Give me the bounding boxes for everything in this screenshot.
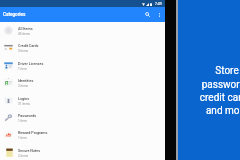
staticText: 2 items [18, 154, 29, 158]
staticText: 3 items [18, 49, 29, 53]
staticText: Credit Cards [18, 44, 39, 48]
button[interactable]: Driver Licenses [0, 57, 165, 74]
button[interactable]: Passwords [0, 109, 165, 126]
staticText: 1 item [18, 119, 27, 123]
staticText: Identities [18, 79, 34, 83]
staticText: Categories [3, 12, 26, 17]
staticText: 1 item [18, 67, 27, 71]
staticText: Driver Licenses [18, 62, 44, 66]
staticText: All Items [18, 27, 33, 31]
staticText: Store passwords, credit cards, and more [162, 65, 240, 116]
button[interactable]: More options [154, 7, 165, 22]
staticText: 1 item [18, 136, 27, 140]
staticText: 45 items [18, 32, 30, 36]
button[interactable]: Secure Notes [0, 144, 165, 160]
button[interactable]: Credit Cards [0, 39, 165, 56]
button[interactable]: Search [141, 7, 154, 22]
button[interactable]: Logins [0, 92, 165, 109]
staticText: Passwords [18, 114, 37, 118]
button[interactable]: Reward Programs [0, 126, 165, 143]
button[interactable]: Identities [0, 74, 165, 91]
staticText: Reward Programs [18, 131, 48, 135]
staticText: 7:49 [155, 2, 162, 6]
staticText: Secure Notes [18, 149, 41, 153]
button[interactable]: All Items [0, 22, 165, 39]
staticText: 31 items [18, 102, 30, 106]
staticText: Logins [18, 97, 30, 101]
staticText: 2 items [18, 84, 29, 88]
